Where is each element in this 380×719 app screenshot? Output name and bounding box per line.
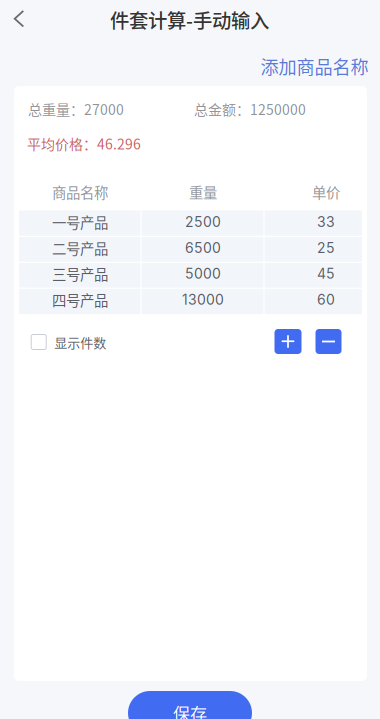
staticText: 33 xyxy=(317,213,335,230)
staticText: 2500 xyxy=(185,213,221,230)
staticText: 60 xyxy=(317,291,335,308)
staticText: 显示件数 xyxy=(54,332,106,351)
staticText: 13000 xyxy=(182,291,224,308)
button[interactable]: Remove item xyxy=(315,329,341,354)
button[interactable]: 显示件数 xyxy=(31,327,106,356)
staticText: 45 xyxy=(317,265,335,282)
staticText: 25 xyxy=(317,239,335,256)
staticText: 总金额：1250000 xyxy=(194,99,306,119)
button[interactable]: 添加商品名称 xyxy=(254,47,374,85)
staticText: 商品名称 xyxy=(52,182,108,202)
staticText: 二号产品 xyxy=(52,237,108,258)
staticText: 5000 xyxy=(185,265,221,282)
button[interactable]: Back xyxy=(0,0,39,39)
staticText: 6500 xyxy=(185,239,221,256)
staticText: 总重量：27000 xyxy=(28,99,124,119)
staticText: 平均价格：46.296 xyxy=(27,133,141,154)
button[interactable]: Add item xyxy=(274,329,301,354)
staticText: 三号产品 xyxy=(52,263,108,284)
staticText: 一号产品 xyxy=(52,211,108,232)
button[interactable]: 保存 xyxy=(128,691,252,719)
staticText: 件套计算-手动输入 xyxy=(110,5,269,33)
staticText: 四号产品 xyxy=(52,289,108,310)
staticText: 重量 xyxy=(189,182,217,202)
staticText: 单价 xyxy=(312,182,340,202)
staticText: 添加商品名称 xyxy=(260,53,368,79)
staticText: 保存 xyxy=(173,701,207,719)
